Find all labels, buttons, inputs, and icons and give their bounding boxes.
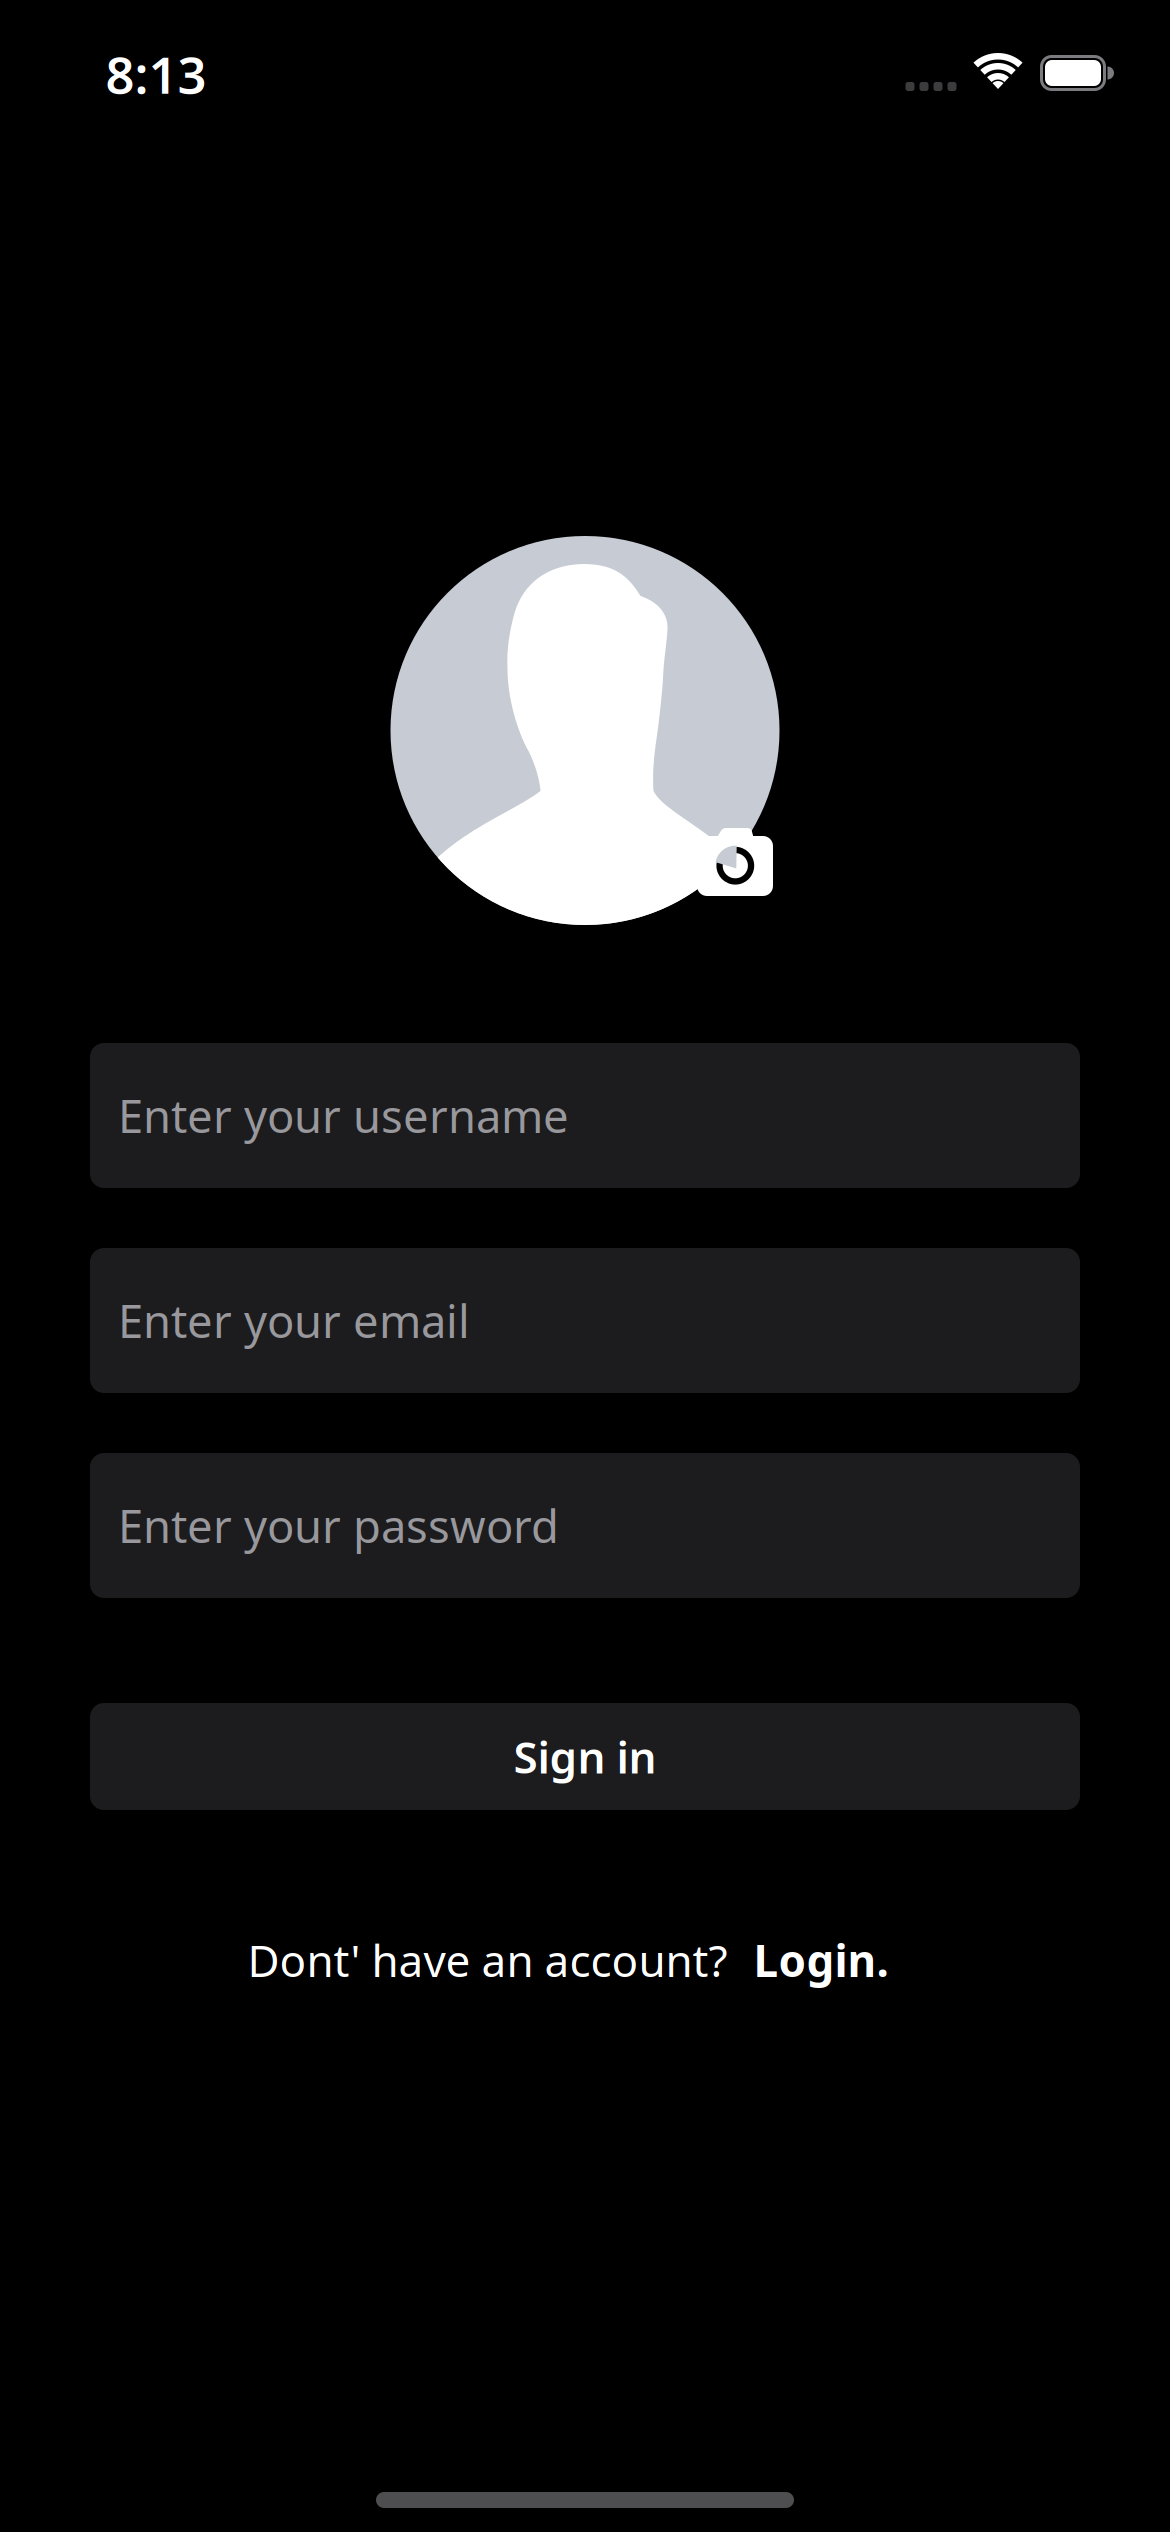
button[interactable]: Sign in [90, 1703, 1080, 1810]
staticText: 8:13 [105, 40, 206, 108]
button[interactable]: Enter your email [90, 1248, 1080, 1393]
button[interactable]: Enter your password [90, 1453, 1080, 1598]
staticText: Enter your password [118, 1495, 559, 1556]
staticText: Login. [753, 1931, 888, 1989]
button[interactable]: Change profile photo [695, 820, 775, 900]
staticText: Enter your email [118, 1290, 470, 1351]
staticText: Dont' have an account? [247, 1931, 727, 1989]
button[interactable]: Enter your username [90, 1043, 1080, 1188]
staticText: Sign in [513, 1727, 656, 1786]
button[interactable]: Login. [753, 1931, 888, 1989]
staticText: Enter your username [118, 1085, 569, 1146]
